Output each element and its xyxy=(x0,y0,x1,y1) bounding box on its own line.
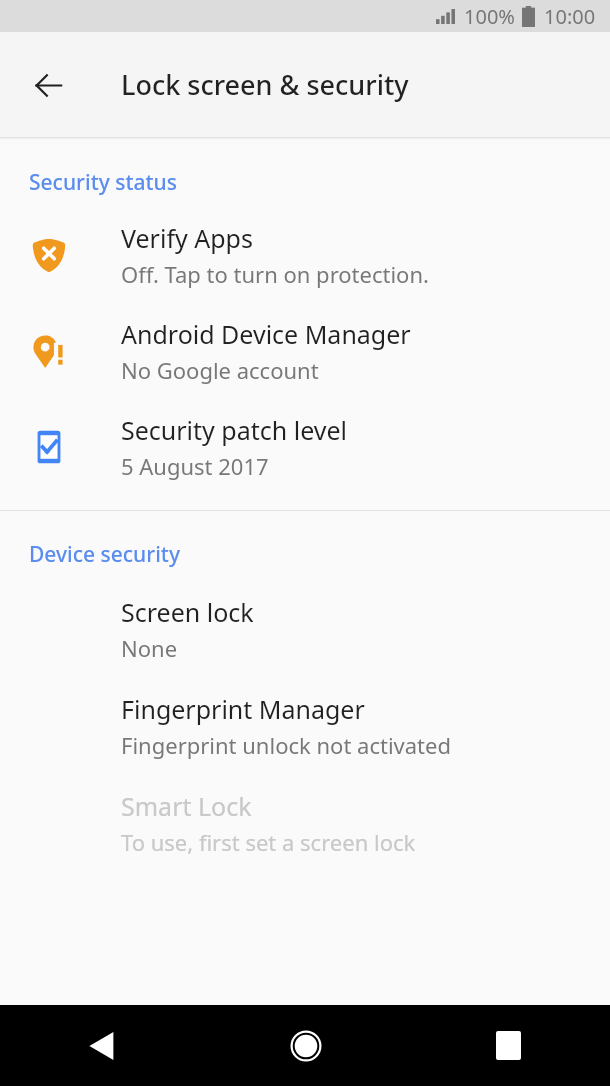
staticText: Off. Tap to turn on protection. xyxy=(121,259,429,289)
staticText: To use, first set a screen lock xyxy=(121,827,416,857)
staticText: 100% xyxy=(464,3,515,30)
button[interactable]: Screen lock xyxy=(0,595,610,663)
staticText: 10:00 xyxy=(544,3,596,30)
button[interactable]: Fingerprint Manager xyxy=(0,692,610,760)
staticText: Security status xyxy=(29,168,177,197)
staticText: Screen lock xyxy=(121,595,254,629)
staticText: Device security xyxy=(29,540,180,569)
staticText: Smart Lock xyxy=(121,789,252,823)
staticText: None xyxy=(121,633,178,663)
button[interactable]: Android Device Manager xyxy=(0,317,610,385)
button[interactable]: Back xyxy=(22,59,74,111)
staticText: No Google account xyxy=(121,355,319,385)
button[interactable]: Smart Lock xyxy=(0,789,610,857)
staticText: Fingerprint Manager xyxy=(121,692,365,726)
staticText: Android Device Manager xyxy=(121,317,411,351)
button[interactable]: Home xyxy=(204,1005,407,1086)
button[interactable]: Recent apps xyxy=(407,1005,610,1086)
button[interactable]: Security patch level xyxy=(0,413,610,481)
staticText: Verify Apps xyxy=(121,221,253,255)
staticText: Lock screen & security xyxy=(121,66,409,103)
button[interactable]: Back xyxy=(0,1005,204,1086)
staticText: Security patch level xyxy=(121,413,348,447)
staticText: 5 August 2017 xyxy=(121,451,269,481)
button[interactable]: Verify Apps xyxy=(0,221,610,289)
staticText: Fingerprint unlock not activated xyxy=(121,730,451,760)
